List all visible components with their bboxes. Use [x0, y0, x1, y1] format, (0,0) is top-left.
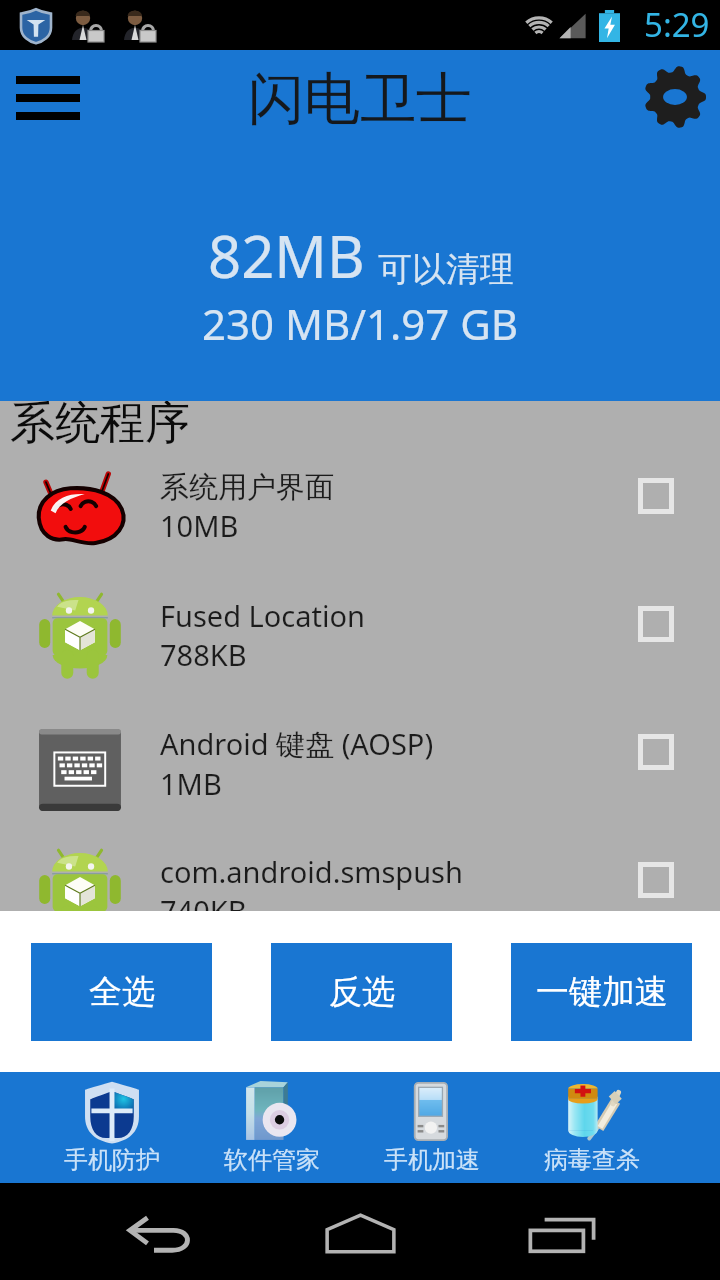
- button[interactable]: Select app: [638, 478, 674, 514]
- staticText: 手机加速: [384, 1145, 480, 1175]
- staticText: 全选: [89, 971, 155, 1013]
- staticText: com.android.smspush: [160, 852, 463, 891]
- button[interactable]: Home: [280, 1183, 440, 1280]
- button[interactable]: 系统用户界面: [0, 432, 720, 560]
- button[interactable]: com.android.smspush: [0, 816, 720, 911]
- staticText: 230 MB/1.97 GB: [202, 295, 519, 352]
- staticText: 软件管家: [224, 1145, 320, 1175]
- button[interactable]: Menu: [0, 50, 96, 143]
- staticText: 788KB: [160, 635, 247, 674]
- staticText: 740KB: [160, 891, 247, 911]
- button[interactable]: Back: [80, 1183, 240, 1280]
- staticText: 病毒查杀: [544, 1145, 640, 1175]
- button[interactable]: Android 键盘 (AOSP): [0, 688, 720, 816]
- staticText: 5:29: [644, 2, 710, 47]
- staticText: 系统程序: [10, 401, 190, 452]
- button[interactable]: 手机加速: [352, 1072, 512, 1183]
- button[interactable]: Select app: [638, 862, 674, 898]
- button[interactable]: Settings: [630, 50, 720, 143]
- button[interactable]: Select app: [638, 606, 674, 642]
- staticText: 可以清理: [378, 248, 514, 291]
- button[interactable]: 病毒查杀: [512, 1072, 672, 1183]
- button[interactable]: Select app: [638, 734, 674, 770]
- staticText: Fused Location: [160, 596, 365, 635]
- button[interactable]: 一键加速: [511, 943, 692, 1041]
- staticText: 一键加速: [536, 971, 668, 1013]
- button[interactable]: 全选: [31, 943, 212, 1041]
- staticText: 10MB: [160, 506, 239, 545]
- button[interactable]: 软件管家: [192, 1072, 352, 1183]
- button[interactable]: Recents: [483, 1183, 643, 1280]
- staticText: 系统用户界面: [160, 469, 334, 506]
- button[interactable]: 手机防护: [31, 1072, 192, 1183]
- staticText: 闪电卫士: [248, 64, 472, 135]
- staticText: 反选: [329, 971, 395, 1013]
- staticText: 1MB: [160, 764, 222, 803]
- staticText: 手机防护: [64, 1145, 160, 1175]
- button[interactable]: 反选: [271, 943, 452, 1041]
- staticText: 82MB: [208, 216, 365, 295]
- button[interactable]: Fused Location: [0, 560, 720, 688]
- staticText: Android 键盘 (AOSP): [160, 724, 434, 764]
